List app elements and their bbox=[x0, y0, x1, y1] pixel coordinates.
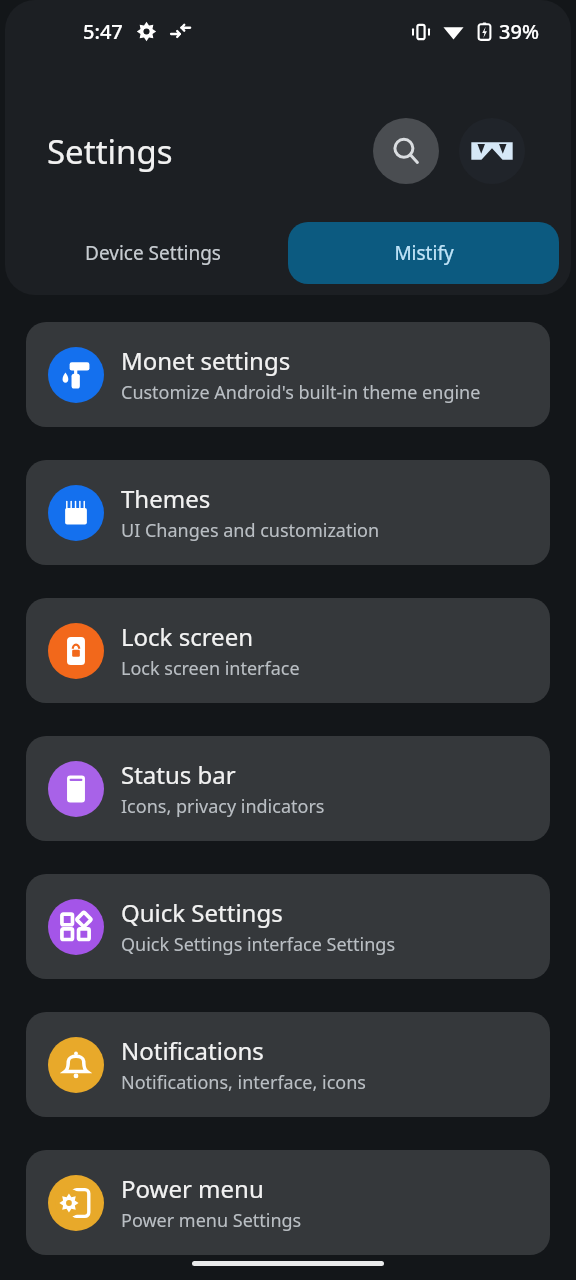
staticText: Status bar bbox=[121, 758, 236, 791]
staticText: Icons, privacy indicators bbox=[121, 794, 325, 819]
staticText: Themes bbox=[121, 482, 211, 515]
staticText: Quick Settings interface Settings bbox=[121, 932, 396, 957]
staticText: 5:47 bbox=[83, 18, 123, 45]
staticText: Lock screen interface bbox=[121, 656, 300, 681]
button[interactable]: Quick Settings bbox=[26, 874, 550, 979]
button[interactable]: Mistify bbox=[288, 222, 559, 284]
staticText: Quick Settings bbox=[121, 896, 283, 929]
staticText: Device Settings bbox=[85, 240, 221, 266]
staticText: 39% bbox=[499, 18, 539, 45]
staticText: Power menu bbox=[121, 1172, 264, 1205]
button[interactable]: Notifications bbox=[26, 1012, 550, 1117]
staticText: Mistify bbox=[394, 240, 454, 266]
staticText: Notifications, interface, icons bbox=[121, 1070, 366, 1095]
staticText: Customize Android's built-in theme engin… bbox=[121, 380, 481, 405]
staticText: Settings bbox=[47, 129, 173, 174]
staticText: Lock screen bbox=[121, 620, 254, 653]
staticText: Monet settings bbox=[121, 344, 291, 377]
button[interactable]: Status bar bbox=[26, 736, 550, 841]
staticText: Notifications bbox=[121, 1034, 264, 1067]
button[interactable]: Themes bbox=[26, 460, 550, 565]
button[interactable]: Power menu bbox=[26, 1150, 550, 1255]
button[interactable]: Monet settings bbox=[26, 322, 550, 427]
button[interactable]: Device Settings bbox=[17, 222, 288, 284]
button[interactable]: Lock screen bbox=[26, 598, 550, 703]
staticText: Power menu Settings bbox=[121, 1208, 302, 1233]
staticText: UI Changes and customization bbox=[121, 518, 380, 543]
button[interactable]: Search bbox=[373, 118, 439, 184]
button[interactable]: Mistify app bbox=[459, 118, 525, 184]
